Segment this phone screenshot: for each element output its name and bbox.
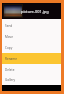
staticText: Move <box>5 35 13 39</box>
button[interactable]: Delete <box>2 64 61 75</box>
button[interactable]: Move <box>2 31 61 42</box>
button[interactable]: Rename <box>2 53 61 64</box>
staticText: Copy <box>5 46 13 50</box>
staticText: Delete <box>5 68 15 72</box>
staticText: picture-001.jpg <box>21 9 49 14</box>
staticText: Send <box>5 24 13 28</box>
staticText: Gallery <box>5 78 16 82</box>
button[interactable]: Send <box>2 20 61 31</box>
button[interactable]: Copy <box>2 42 61 53</box>
button[interactable]: Gallery <box>2 75 61 85</box>
staticText: Rename <box>5 57 17 61</box>
